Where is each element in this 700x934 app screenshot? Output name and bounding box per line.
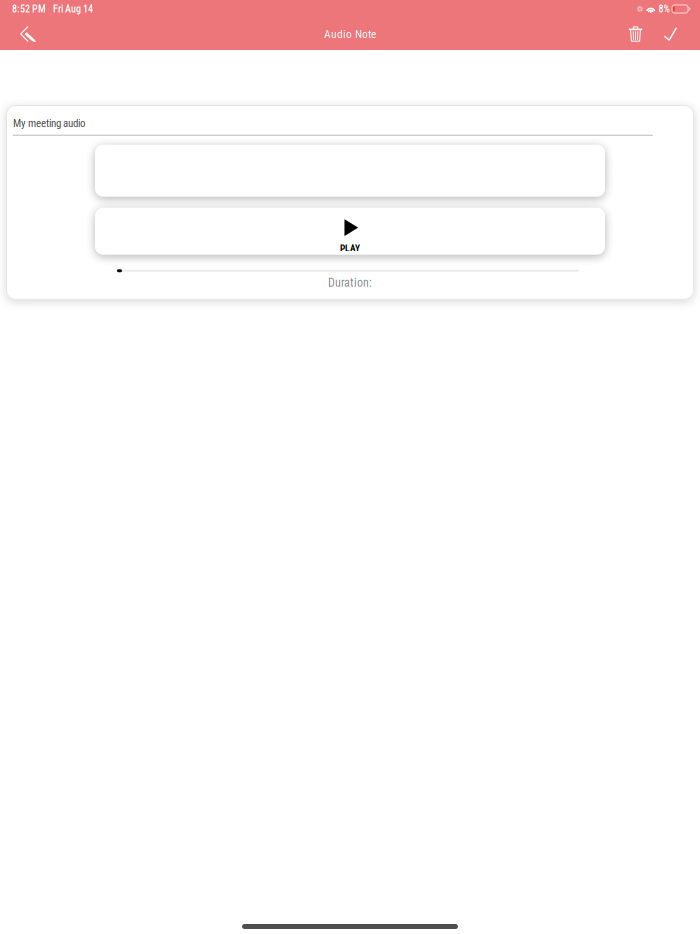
- staticText: My meeting audio: [13, 117, 85, 130]
- staticText: Duration:: [328, 276, 372, 290]
- button[interactable]: Delete: [619, 18, 652, 50]
- staticText: PLAY: [340, 243, 360, 254]
- staticText: 8:52 PM: [12, 3, 46, 15]
- staticText: Fri Aug 14: [53, 3, 93, 15]
- button[interactable]: Save: [652, 17, 700, 50]
- staticText: Audio Note: [324, 27, 376, 41]
- button[interactable]: Back: [0, 18, 47, 50]
- staticText: 8%: [658, 3, 669, 15]
- button[interactable]: PLAY: [95, 208, 605, 255]
